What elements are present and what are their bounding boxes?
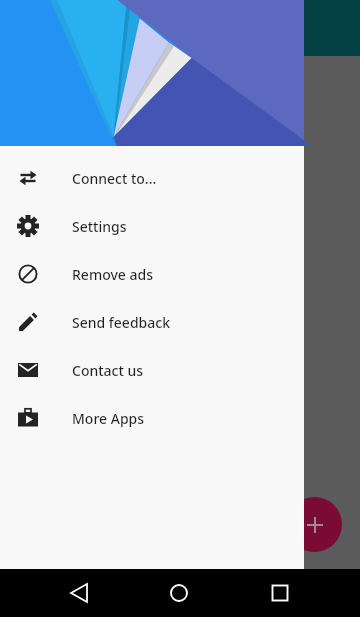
staticText: Remove ads <box>72 265 153 284</box>
staticText: sit amed. <box>186 99 277 128</box>
button[interactable]: Add <box>287 497 342 552</box>
button[interactable]: Send feedback <box>0 298 304 346</box>
button[interactable]: Settings <box>0 202 304 250</box>
button[interactable]: Connect to... <box>0 154 304 202</box>
button[interactable]: Remove ads <box>0 250 304 298</box>
staticText: Send feedback <box>72 313 170 332</box>
button[interactable]: Recents <box>268 581 292 605</box>
button[interactable]: More Apps <box>0 394 304 442</box>
button[interactable]: Back <box>67 581 91 605</box>
staticText: Contact us <box>72 361 144 380</box>
staticText: Settings <box>72 217 127 236</box>
button[interactable]: Contact us <box>0 346 304 394</box>
staticText: Connect to... <box>72 169 157 188</box>
button[interactable]: Home <box>167 581 191 605</box>
staticText: More Apps <box>72 409 145 428</box>
